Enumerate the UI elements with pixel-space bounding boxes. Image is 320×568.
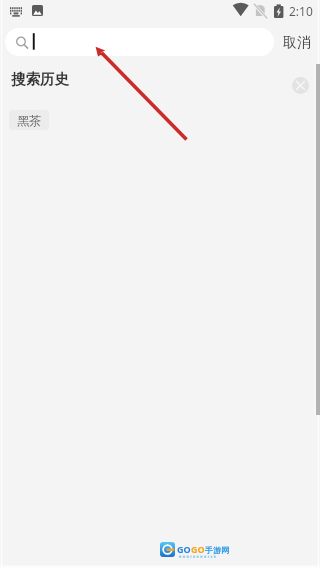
staticText: 手游网 [205, 545, 229, 555]
button[interactable]: 黑茶 [9, 110, 49, 130]
staticText: 黑茶 [17, 113, 41, 128]
button[interactable]: Clear search history [292, 77, 309, 94]
staticText: GO [177, 543, 191, 555]
button[interactable]: Search field [5, 28, 274, 56]
button[interactable]: 取消 [280, 33, 314, 53]
staticText: 取消 [283, 34, 311, 52]
staticText: 2:10 [289, 3, 313, 19]
staticText: GO [191, 543, 205, 555]
staticText: 搜索历史 [11, 70, 69, 88]
